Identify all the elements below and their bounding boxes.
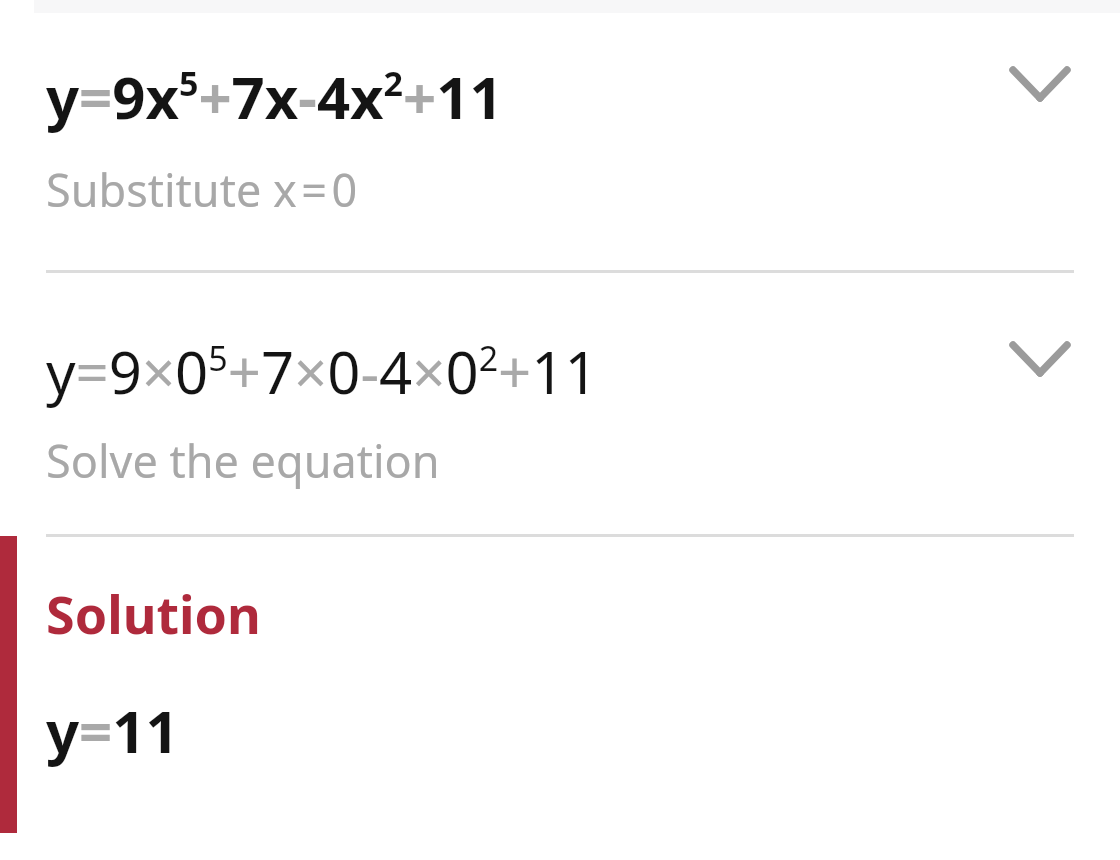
staticText: y=9x5+7x-4x2+11 bbox=[46, 57, 503, 136]
staticText: Solve the equation bbox=[46, 430, 440, 491]
button[interactable]: Collapse step 1 bbox=[994, 38, 1086, 130]
button[interactable]: Collapse step 2 bbox=[994, 313, 1086, 405]
button[interactable]: y=9x5+7x-4x2+11 bbox=[0, 0, 1120, 270]
staticText: Solution bbox=[46, 578, 261, 649]
staticText: y=11 bbox=[46, 691, 179, 770]
button[interactable]: y=9×05+7×0-4×02+11 bbox=[0, 271, 1120, 535]
staticText: y=9×05+7×0-4×02+11 bbox=[46, 332, 598, 411]
button[interactable]: Solution bbox=[0, 536, 1120, 834]
staticText: Substitute x = 0 bbox=[46, 159, 358, 220]
